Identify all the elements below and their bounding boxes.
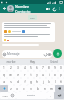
staticText: 9 — [54, 66, 56, 70]
staticText: u — [42, 73, 44, 77]
button[interactable]: x — [14, 85, 20, 92]
staticText: 4 — [24, 66, 26, 70]
staticText: e — [17, 73, 19, 77]
button[interactable]: Usted — [43, 59, 64, 65]
button[interactable]: 2 — [7, 65, 14, 71]
button[interactable]: p — [58, 71, 64, 78]
staticText: j — [43, 80, 44, 84]
button[interactable]: f — [21, 78, 28, 85]
staticText: escribe — [6, 60, 16, 64]
button[interactable]: a — [0, 78, 7, 85]
staticText: x — [16, 87, 18, 91]
button[interactable]: Shift — [0, 85, 8, 92]
staticText: 7 — [42, 66, 44, 70]
staticText: i — [49, 73, 50, 77]
button[interactable]: n — [41, 85, 48, 92]
staticText: Español — [27, 94, 36, 97]
button[interactable]: k — [46, 78, 52, 85]
staticText: h — [36, 80, 38, 84]
button[interactable]: More options — [57, 6, 62, 11]
staticText: t — [30, 73, 32, 77]
button[interactable]: 0 — [58, 65, 64, 71]
staticText: 3 — [17, 66, 19, 70]
staticText: a — [3, 80, 5, 84]
button[interactable]: e — [14, 71, 21, 78]
staticText: Nombre Contacto — [15, 4, 45, 13]
staticText: 5 — [30, 66, 32, 70]
staticText: z — [10, 87, 12, 91]
staticText: 0 — [60, 66, 62, 70]
staticText: d — [17, 80, 19, 84]
button[interactable]: 1 — [0, 65, 7, 71]
button[interactable]: Back — [2, 6, 7, 11]
staticText: q — [3, 73, 5, 77]
button[interactable]: 6 — [34, 65, 40, 71]
button[interactable]: ?123 — [0, 92, 9, 99]
staticText: m — [50, 87, 53, 91]
button[interactable]: y — [34, 71, 40, 78]
staticText: p — [60, 73, 62, 77]
button[interactable]: d — [14, 78, 21, 85]
staticText: Hoy — [30, 60, 35, 64]
staticText: ?123 — [2, 94, 8, 97]
staticText: s — [10, 80, 12, 84]
button[interactable]: Call — [51, 6, 57, 12]
button[interactable]: w — [7, 71, 14, 78]
button[interactable]: . — [47, 92, 54, 99]
staticText: c — [23, 87, 25, 91]
button[interactable]: 8 — [46, 65, 52, 71]
staticText: l — [55, 80, 56, 84]
button[interactable]: 3 — [14, 65, 21, 71]
button[interactable]: Video call — [45, 6, 51, 12]
staticText: 1 — [3, 66, 5, 70]
staticText: f — [24, 80, 26, 84]
staticText: Mensaje — [7, 52, 20, 56]
staticText: Usted — [50, 60, 58, 64]
button[interactable]: q — [0, 71, 7, 78]
staticText: r — [24, 73, 26, 77]
button[interactable]: 9 — [52, 65, 58, 71]
button[interactable]: g — [28, 78, 34, 85]
button[interactable]: u — [40, 71, 46, 78]
staticText: k — [48, 80, 50, 84]
button[interactable]: o — [52, 71, 58, 78]
staticText: o — [54, 73, 56, 77]
button[interactable]: j — [40, 78, 46, 85]
button[interactable]: v — [27, 85, 34, 92]
staticText: n — [44, 87, 46, 91]
button[interactable]: Send voice message — [53, 49, 62, 58]
staticText: y — [36, 73, 38, 77]
button[interactable]: Hoy — [22, 59, 43, 65]
staticText: w — [9, 73, 12, 77]
staticText: . — [50, 94, 51, 98]
button[interactable]: Space — [16, 92, 47, 99]
button[interactable]: m — [48, 85, 55, 92]
staticText: g — [30, 80, 32, 84]
button[interactable]: i — [46, 71, 52, 78]
staticText: HOY — [30, 16, 35, 19]
staticText: 2 — [10, 66, 12, 70]
button[interactable]: z — [8, 85, 14, 92]
staticText: v — [30, 87, 32, 91]
button[interactable]: escribe — [0, 59, 22, 65]
button[interactable]: Backspace — [55, 85, 64, 92]
button[interactable]: Mensaje — [2, 50, 52, 58]
staticText: ñ — [60, 80, 62, 84]
button[interactable]: s — [7, 78, 14, 85]
button[interactable]: t — [28, 71, 34, 78]
button[interactable]: h — [34, 78, 40, 85]
button[interactable]: b — [34, 85, 41, 92]
button[interactable]: Emoji — [9, 92, 16, 99]
button[interactable]: c — [20, 85, 27, 92]
button[interactable]: l — [52, 78, 58, 85]
button[interactable]: ñ — [58, 78, 64, 85]
button[interactable]: Enter — [54, 92, 64, 99]
button[interactable]: 7 — [40, 65, 46, 71]
button[interactable] — [2, 22, 55, 42]
button[interactable]: 5 — [28, 65, 34, 71]
button[interactable] — [7, 5, 14, 12]
button[interactable]: r — [21, 71, 28, 78]
staticText: 8 — [48, 66, 50, 70]
button[interactable]: 4 — [21, 65, 28, 71]
